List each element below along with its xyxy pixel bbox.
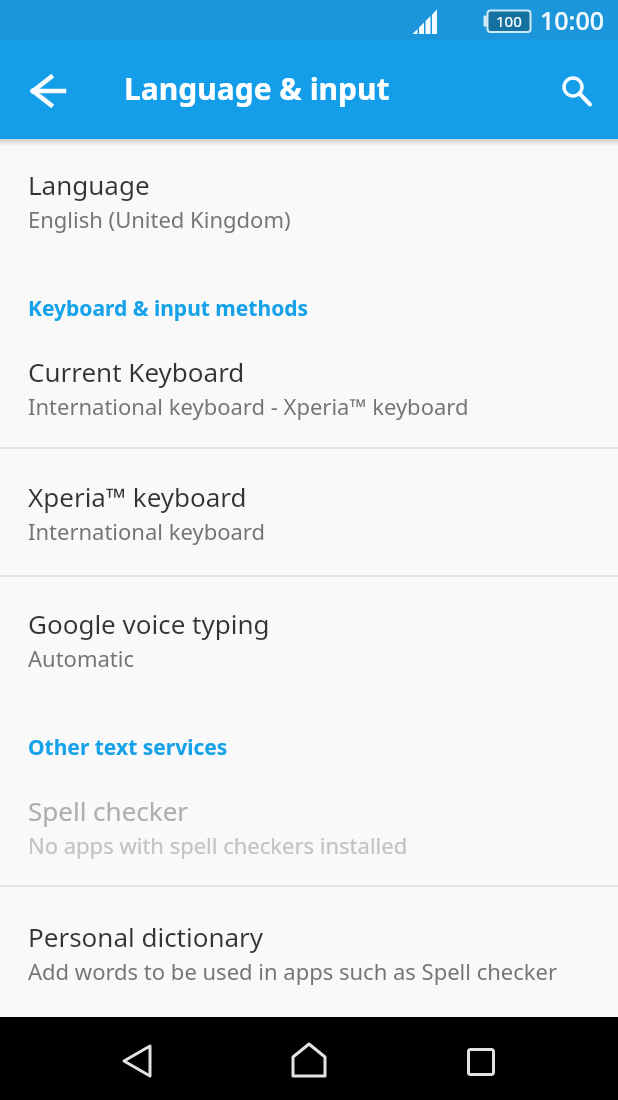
- staticText: Keyboard & input methods: [28, 294, 309, 323]
- staticText: 10:00: [540, 3, 605, 37]
- button[interactable]: Personal dictionary: [0, 886, 618, 1014]
- staticText: International keyboard: [28, 516, 265, 546]
- staticText: Add words to be used in apps such as Spe…: [28, 956, 558, 986]
- staticText: Language: [28, 167, 150, 202]
- button[interactable]: [268, 1017, 348, 1100]
- staticText: International keyboard - Xperia™ keyboar…: [28, 391, 469, 421]
- staticText: Other text services: [28, 733, 228, 762]
- button[interactable]: Language: [0, 139, 618, 258]
- staticText: Xperia™ keyboard: [28, 479, 247, 514]
- staticText: English (United Kingdom): [28, 204, 291, 234]
- staticText: Spell checker: [28, 793, 189, 828]
- button[interactable]: [98, 1017, 178, 1100]
- button[interactable]: [538, 40, 618, 139]
- button[interactable]: [0, 40, 90, 139]
- button[interactable]: Spell checker: [0, 765, 618, 885]
- staticText: No apps with spell checkers installed: [28, 830, 408, 860]
- button[interactable]: Current Keyboard: [0, 326, 618, 447]
- staticText: Personal dictionary: [28, 919, 264, 954]
- staticText: Current Keyboard: [28, 354, 245, 389]
- staticText: Google voice typing: [28, 606, 270, 641]
- staticText: 100: [496, 11, 522, 31]
- button[interactable]: Google voice typing: [0, 576, 618, 699]
- button[interactable]: Xperia™ keyboard: [0, 448, 618, 575]
- staticText: Automatic: [28, 643, 134, 673]
- staticText: Language & input: [124, 68, 390, 109]
- button[interactable]: [440, 1017, 520, 1100]
